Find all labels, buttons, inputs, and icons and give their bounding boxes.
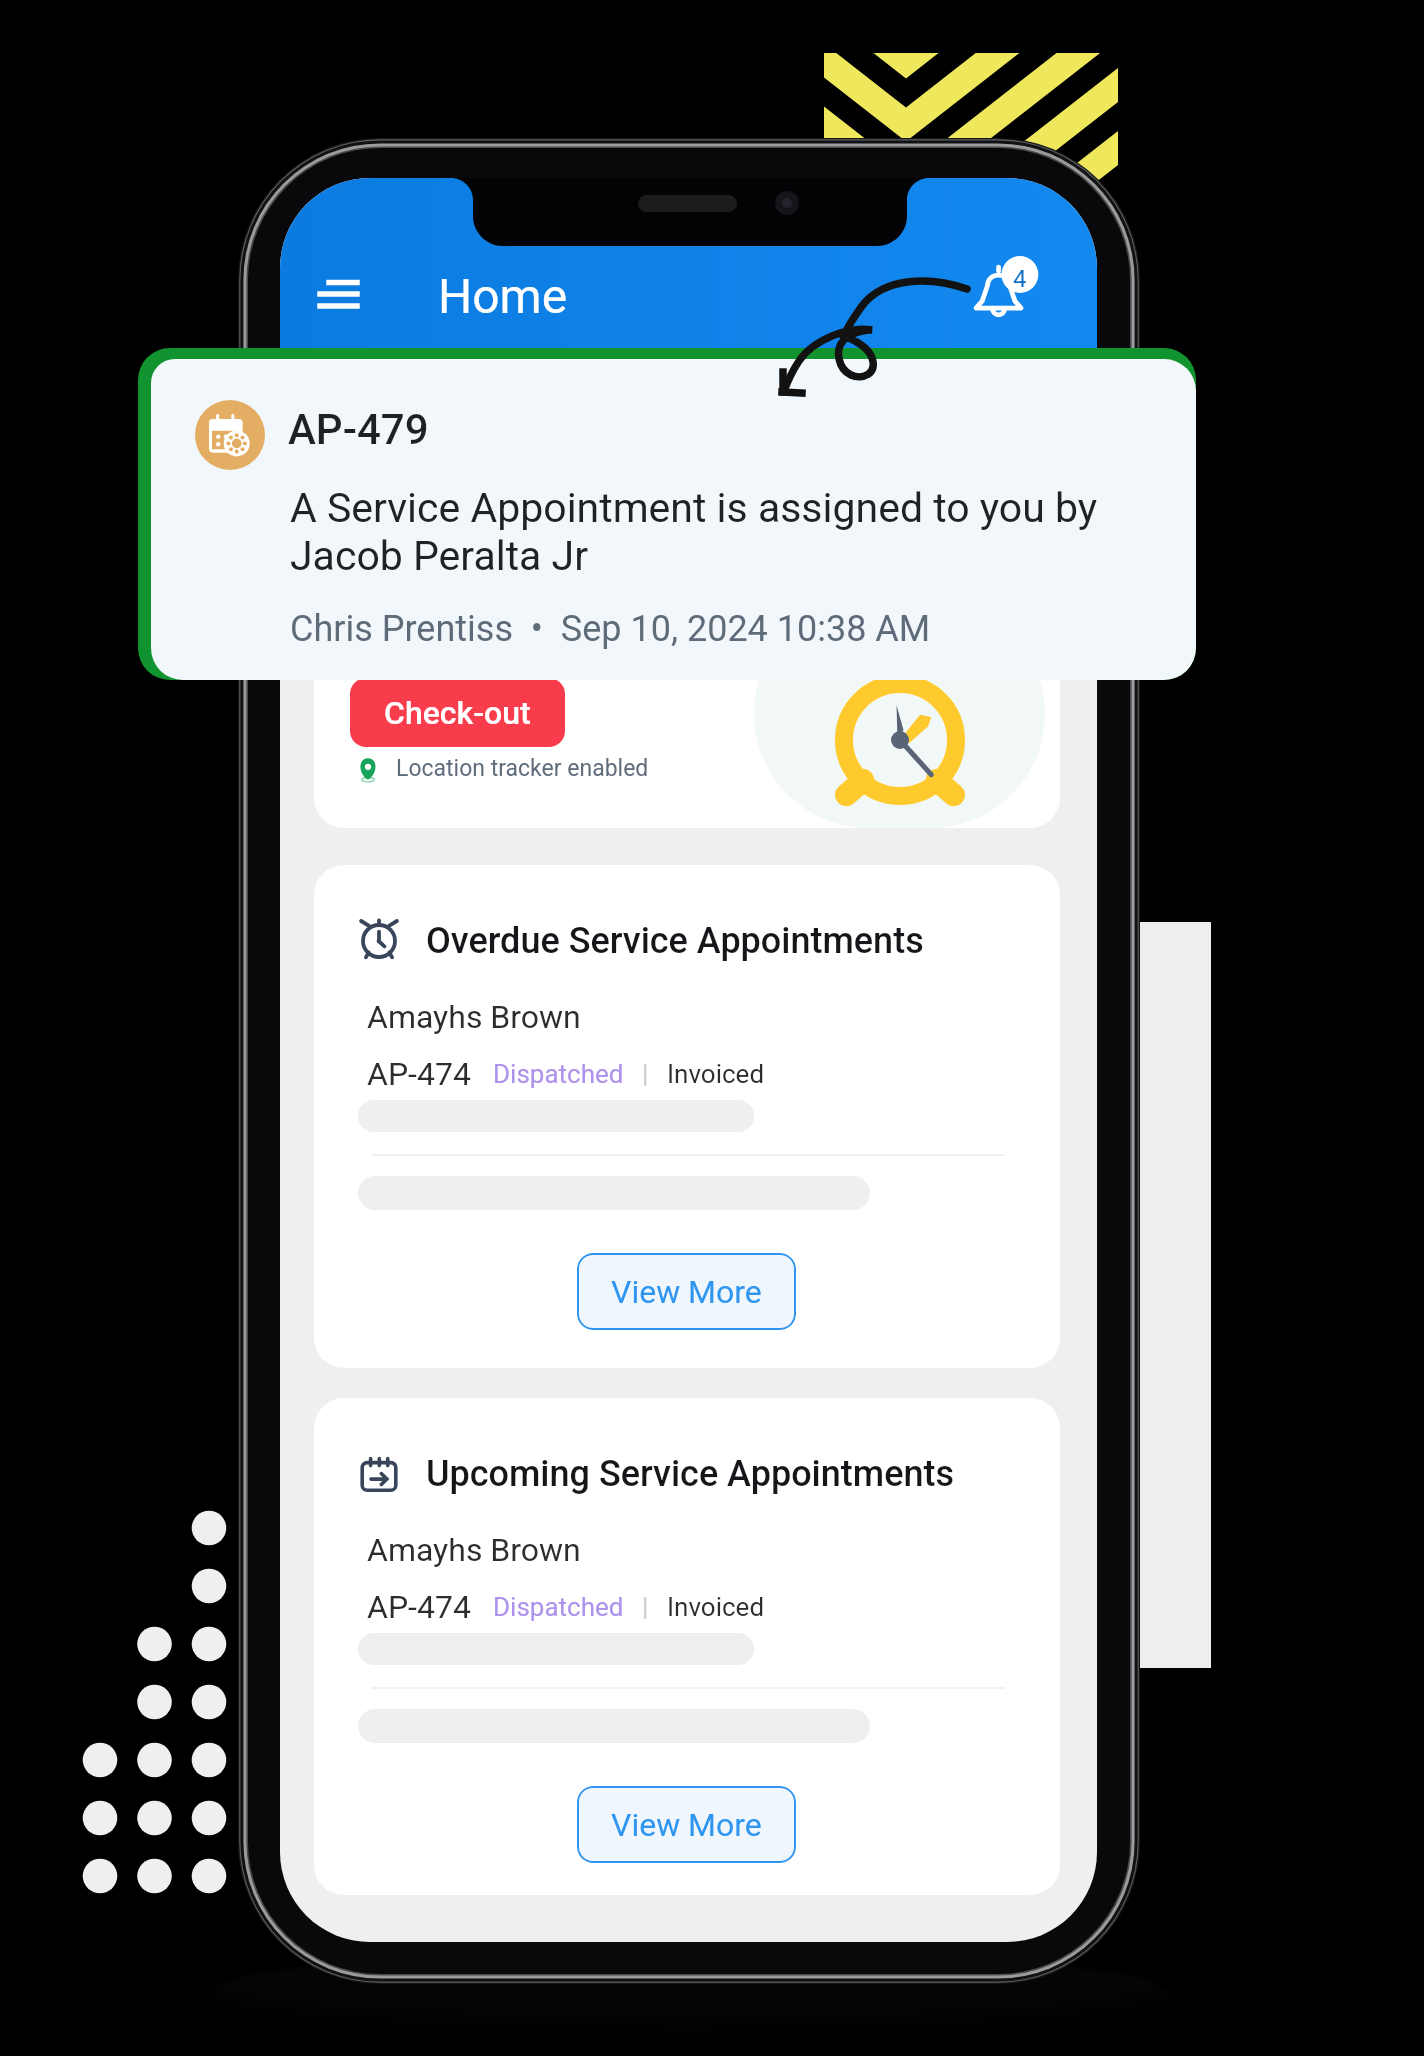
staticText: |	[642, 1592, 649, 1622]
button[interactable]: Upcoming Service Appointments	[314, 1398, 1060, 1895]
staticText: Chris Prentiss • Sep 10, 2024 10:38 AM	[290, 608, 931, 650]
staticText: Location tracker enabled	[396, 755, 649, 782]
staticText: AP-474	[367, 1055, 471, 1093]
button[interactable]: View More	[577, 1786, 796, 1863]
staticText: Check-out	[384, 694, 531, 732]
staticText: Dispatched	[493, 1059, 624, 1089]
staticText: 4	[1013, 265, 1027, 293]
staticText: View More	[611, 1273, 762, 1311]
staticText: Invoiced	[667, 1592, 765, 1622]
staticText: Amayhs Brown	[367, 998, 581, 1036]
staticText: AP-479	[288, 405, 429, 454]
staticText: View More	[611, 1806, 762, 1844]
button[interactable]: View More	[577, 1253, 796, 1330]
button[interactable]: Open navigation menu	[306, 262, 374, 330]
staticText: |	[642, 1059, 649, 1089]
staticText: AP-474	[367, 1588, 471, 1626]
staticText: Amayhs Brown	[367, 1531, 581, 1569]
staticText: Invoiced	[667, 1059, 765, 1089]
button[interactable]: Check-out	[350, 678, 565, 747]
staticText: A Service Appointment is assigned to you…	[290, 484, 1170, 580]
button[interactable]: AP-479	[151, 359, 1196, 680]
staticText: Home	[438, 268, 568, 324]
staticText: Dispatched	[493, 1592, 624, 1622]
staticText: Upcoming Service Appointments	[426, 1453, 954, 1495]
staticText: Overdue Service Appointments	[426, 920, 924, 962]
button[interactable]: Overdue Service Appointments	[314, 865, 1060, 1368]
button[interactable]: Notifications	[967, 247, 1049, 329]
